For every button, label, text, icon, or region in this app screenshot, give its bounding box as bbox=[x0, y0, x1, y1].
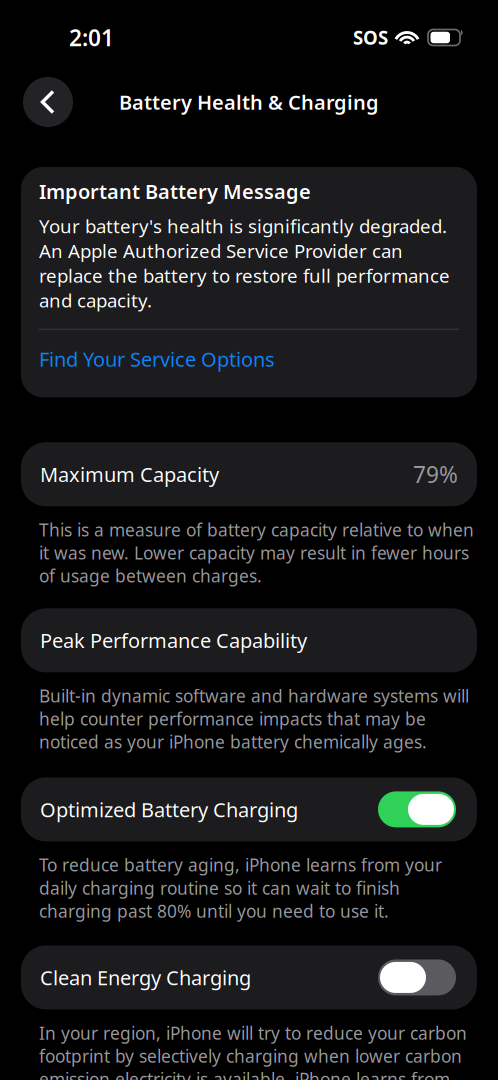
button[interactable]: Back bbox=[23, 77, 73, 127]
staticText: Built-in dynamic software and hardware s… bbox=[39, 684, 469, 753]
staticText: SOS bbox=[353, 25, 388, 50]
button[interactable]: Clean Energy Charging bbox=[21, 945, 477, 1009]
staticText: 79% bbox=[413, 459, 458, 489]
staticText: Peak Performance Capability bbox=[40, 627, 307, 654]
button[interactable]: Maximum Capacity bbox=[21, 442, 477, 506]
staticText: Optimized Battery Charging bbox=[40, 796, 298, 823]
button[interactable]: Find Your Service Options bbox=[39, 330, 459, 372]
staticText: Find Your Service Options bbox=[39, 346, 275, 372]
staticText: To reduce battery aging, iPhone learns f… bbox=[39, 853, 442, 922]
staticText: Clean Energy Charging bbox=[40, 964, 251, 991]
button[interactable]: Peak Performance Capability bbox=[21, 608, 477, 672]
staticText: In your region, iPhone will try to reduc… bbox=[39, 1021, 467, 1080]
staticText: Battery Health & Charging bbox=[119, 89, 379, 115]
staticText: Maximum Capacity bbox=[40, 461, 219, 488]
staticText: 2:01 bbox=[69, 22, 114, 52]
button[interactable]: Optimized Battery Charging bbox=[21, 777, 477, 841]
staticText: Your battery's health is significantly d… bbox=[39, 214, 450, 313]
staticText: This is a measure of battery capacity re… bbox=[39, 518, 474, 587]
staticText: Important Battery Message bbox=[39, 178, 311, 205]
